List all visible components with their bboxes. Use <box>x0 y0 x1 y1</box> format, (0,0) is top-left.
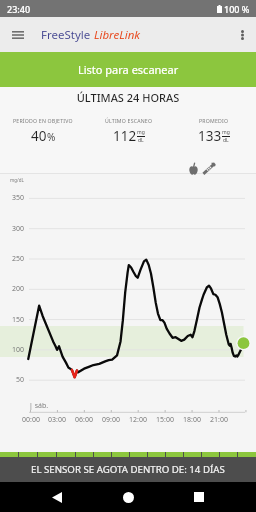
staticText: 21:00 <box>207 415 231 425</box>
button[interactable]: EL SENSOR SE AGOTA DENTRO DE: 14 DÍAS <box>0 457 256 482</box>
staticText: dL <box>138 137 144 144</box>
staticText: 06:00 <box>72 415 96 425</box>
button[interactable]: Recents <box>184 482 214 512</box>
button[interactable]: PROMEDIO <box>171 117 256 145</box>
staticText: 50 <box>5 375 24 385</box>
staticText: 300 <box>5 224 24 234</box>
staticText: 40 <box>31 127 47 145</box>
staticText: 00:00 <box>19 415 43 425</box>
staticText: PROMEDIO <box>199 117 229 124</box>
staticText: PERÍODO EN OBJETIVO <box>13 117 73 124</box>
button[interactable]: Menu <box>0 17 35 52</box>
staticText: 15:00 <box>153 415 177 425</box>
staticText: Listo para escanear <box>78 62 179 77</box>
staticText: % <box>47 130 56 144</box>
staticText: 03:00 <box>45 415 69 425</box>
staticText: 23:40 <box>7 3 31 15</box>
staticText: mg <box>222 129 230 136</box>
staticText: LibreLink <box>91 27 141 43</box>
staticText: 150 <box>5 315 24 325</box>
button[interactable]: Listo para escanear <box>0 52 256 87</box>
staticText: ÚLTIMAS 24 HORAS <box>0 90 256 105</box>
button[interactable]: Add food note <box>189 163 198 175</box>
staticText: 250 <box>5 254 24 264</box>
button[interactable]: Home <box>113 482 143 512</box>
staticText: 350 <box>5 193 24 203</box>
staticText: 09:00 <box>99 415 123 425</box>
staticText: 100 <box>5 345 24 355</box>
staticText: | sáb. <box>29 401 49 411</box>
staticText: 100 % <box>224 3 250 15</box>
button[interactable]: ÚLTIMO ESCANEO <box>86 117 171 145</box>
staticText: EL SENSOR SE AGOTA DENTRO DE: 14 DÍAS <box>31 463 225 476</box>
staticText: FreeStyle <box>41 27 91 43</box>
staticText: 200 <box>5 284 24 294</box>
staticText: 12:00 <box>126 415 150 425</box>
staticText: mg/dL <box>10 177 24 183</box>
staticText: dL <box>223 137 229 144</box>
staticText: ÚLTIMO ESCANEO <box>105 117 153 124</box>
staticText: 133 <box>198 127 222 145</box>
button[interactable]: PERÍODO EN OBJETIVO <box>0 117 86 145</box>
button[interactable]: Back <box>42 482 72 512</box>
staticText: 112 <box>113 127 137 145</box>
staticText: 18:00 <box>180 415 204 425</box>
button[interactable]: Add insulin note <box>203 163 215 174</box>
button[interactable]: More options <box>229 21 256 48</box>
staticText: mg <box>137 129 145 136</box>
